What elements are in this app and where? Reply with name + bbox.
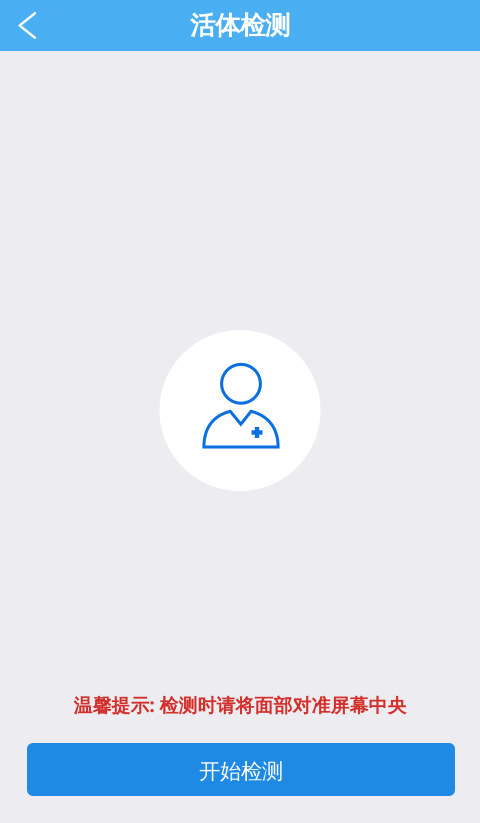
button[interactable]: 开始检测 (27, 743, 455, 796)
staticText: 温馨提示: 检测时请将面部对准屏幕中央 (73, 693, 406, 717)
staticText: 开始检测 (199, 758, 283, 785)
staticText: 活体检测 (190, 10, 290, 41)
button[interactable]: Back (0, 0, 44, 51)
